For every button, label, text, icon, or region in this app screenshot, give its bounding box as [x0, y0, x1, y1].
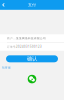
staticText: 2024031500123	[16, 45, 42, 48]
button[interactable]: 找客服	[2, 66, 11, 69]
staticText: 订单号	[7, 45, 16, 48]
staticText: 商户名称	[7, 36, 16, 40]
button[interactable]: Back	[0, 0, 7, 10]
staticText: 确认	[27, 55, 37, 62]
staticText: 支付	[28, 2, 36, 7]
button[interactable]: 确认	[6, 55, 58, 62]
staticText: 某某网络科技有限公司	[16, 37, 46, 40]
staticText: 找客服	[2, 66, 11, 69]
